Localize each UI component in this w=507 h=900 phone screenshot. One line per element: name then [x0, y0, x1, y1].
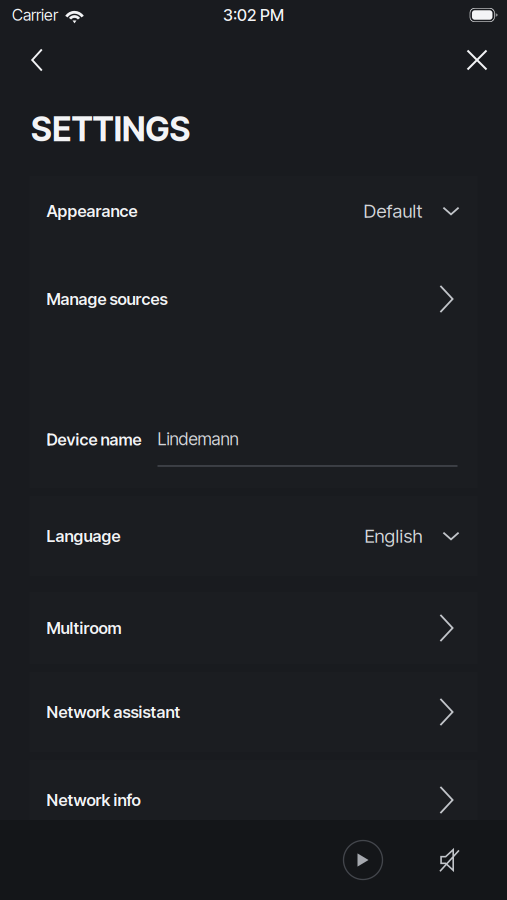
staticText: Language — [46, 526, 120, 546]
staticText: Network info — [46, 790, 140, 810]
staticText: Default — [363, 200, 422, 222]
button[interactable]: Network assistant — [29, 672, 477, 752]
button[interactable]: Language — [29, 496, 477, 576]
staticText: Carrier — [12, 5, 58, 25]
staticText: Device name — [46, 430, 141, 449]
staticText: Manage sources — [46, 289, 167, 309]
staticText: Network assistant — [46, 702, 180, 722]
button[interactable]: Mute — [422, 829, 480, 891]
button[interactable]: Back — [11, 40, 63, 80]
staticText: Multiroom — [46, 618, 121, 638]
button[interactable]: Multiroom — [29, 592, 477, 664]
staticText: SETTINGS — [31, 109, 190, 149]
button[interactable]: Close — [453, 40, 501, 80]
staticText: 3:02 PM — [223, 5, 284, 25]
button[interactable]: Manage sources — [29, 246, 477, 352]
button[interactable]: Play — [333, 829, 393, 891]
staticText: Lindemann — [157, 428, 238, 449]
button[interactable]: Network info — [29, 760, 477, 840]
button[interactable]: Appearance — [29, 176, 477, 246]
staticText: English — [364, 525, 422, 547]
staticText: Appearance — [46, 201, 137, 221]
